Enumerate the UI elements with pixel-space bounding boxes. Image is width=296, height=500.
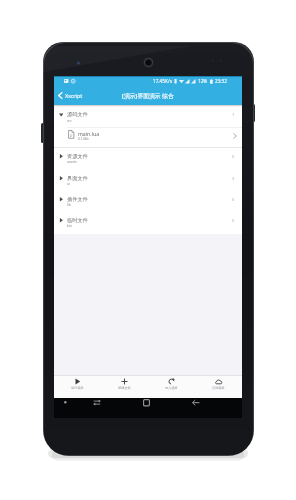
- staticText: 17.45K/s: [153, 78, 172, 84]
- button[interactable]: 导入项目: [148, 375, 195, 398]
- staticText: bin: [67, 223, 73, 228]
- staticText: 插件文件: [67, 196, 88, 203]
- button[interactable]: 新建文件: [101, 375, 148, 398]
- staticText: 12%: [198, 78, 208, 84]
- button[interactable]: [140, 398, 153, 408]
- staticText: main.lua: [78, 130, 100, 137]
- staticText: 6.14kb: [78, 136, 89, 141]
- staticText: 资源文件: [67, 153, 88, 160]
- staticText: 界面文件: [67, 175, 88, 182]
- button[interactable]: 运行项目: [54, 375, 101, 398]
- button[interactable]: [54, 210, 242, 231]
- button[interactable]: 云端项目: [195, 375, 242, 398]
- staticText: src: [67, 118, 72, 123]
- staticText: 导入项目: [165, 386, 178, 390]
- staticText: 1: [232, 112, 235, 117]
- staticText: assets: [67, 159, 77, 164]
- button[interactable]: Xscript: [58, 92, 83, 99]
- button[interactable]: [54, 189, 242, 210]
- staticText: 3: [232, 176, 235, 181]
- staticText: 0: [232, 218, 235, 223]
- button[interactable]: [54, 168, 242, 189]
- staticText: 新建文件: [118, 386, 131, 390]
- button[interactable]: [90, 398, 103, 408]
- button[interactable]: [54, 105, 242, 126]
- button[interactable]: [189, 398, 202, 408]
- button[interactable]: [61, 398, 70, 408]
- button[interactable]: [54, 123, 242, 147]
- staticText: 0: [232, 197, 235, 202]
- staticText: 云端项目: [212, 386, 225, 390]
- staticText: lib: [67, 202, 71, 207]
- staticText: Xscript: [65, 92, 83, 99]
- staticText: 运行项目: [71, 386, 84, 390]
- staticText: 0: [232, 154, 235, 159]
- button[interactable]: [54, 146, 242, 167]
- staticText: [演示]界面演示 综合: [122, 92, 174, 100]
- staticText: 临时文件: [67, 217, 88, 224]
- staticText: 23:32: [215, 78, 227, 84]
- staticText: ui: [67, 181, 70, 186]
- staticText: 源码文件: [67, 111, 88, 118]
